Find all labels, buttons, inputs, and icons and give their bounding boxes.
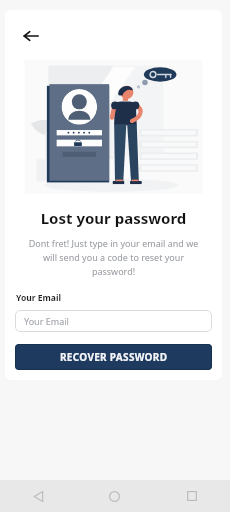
staticText: Lost your password	[5, 208, 222, 228]
staticText: RECOVER PASSWORD	[60, 350, 168, 364]
staticText: Your Email	[16, 292, 61, 304]
button[interactable]: Home	[76, 480, 153, 512]
button[interactable]: Back	[15, 20, 47, 52]
staticText: Your Email	[24, 315, 69, 327]
button[interactable]: RECOVER PASSWORD	[15, 344, 212, 370]
staticText: Dont fret! Just type in your email and w…	[21, 237, 206, 278]
button[interactable]: Your Email	[15, 310, 212, 332]
button[interactable]: Recent apps	[153, 480, 230, 512]
button[interactable]: Back	[0, 480, 76, 512]
